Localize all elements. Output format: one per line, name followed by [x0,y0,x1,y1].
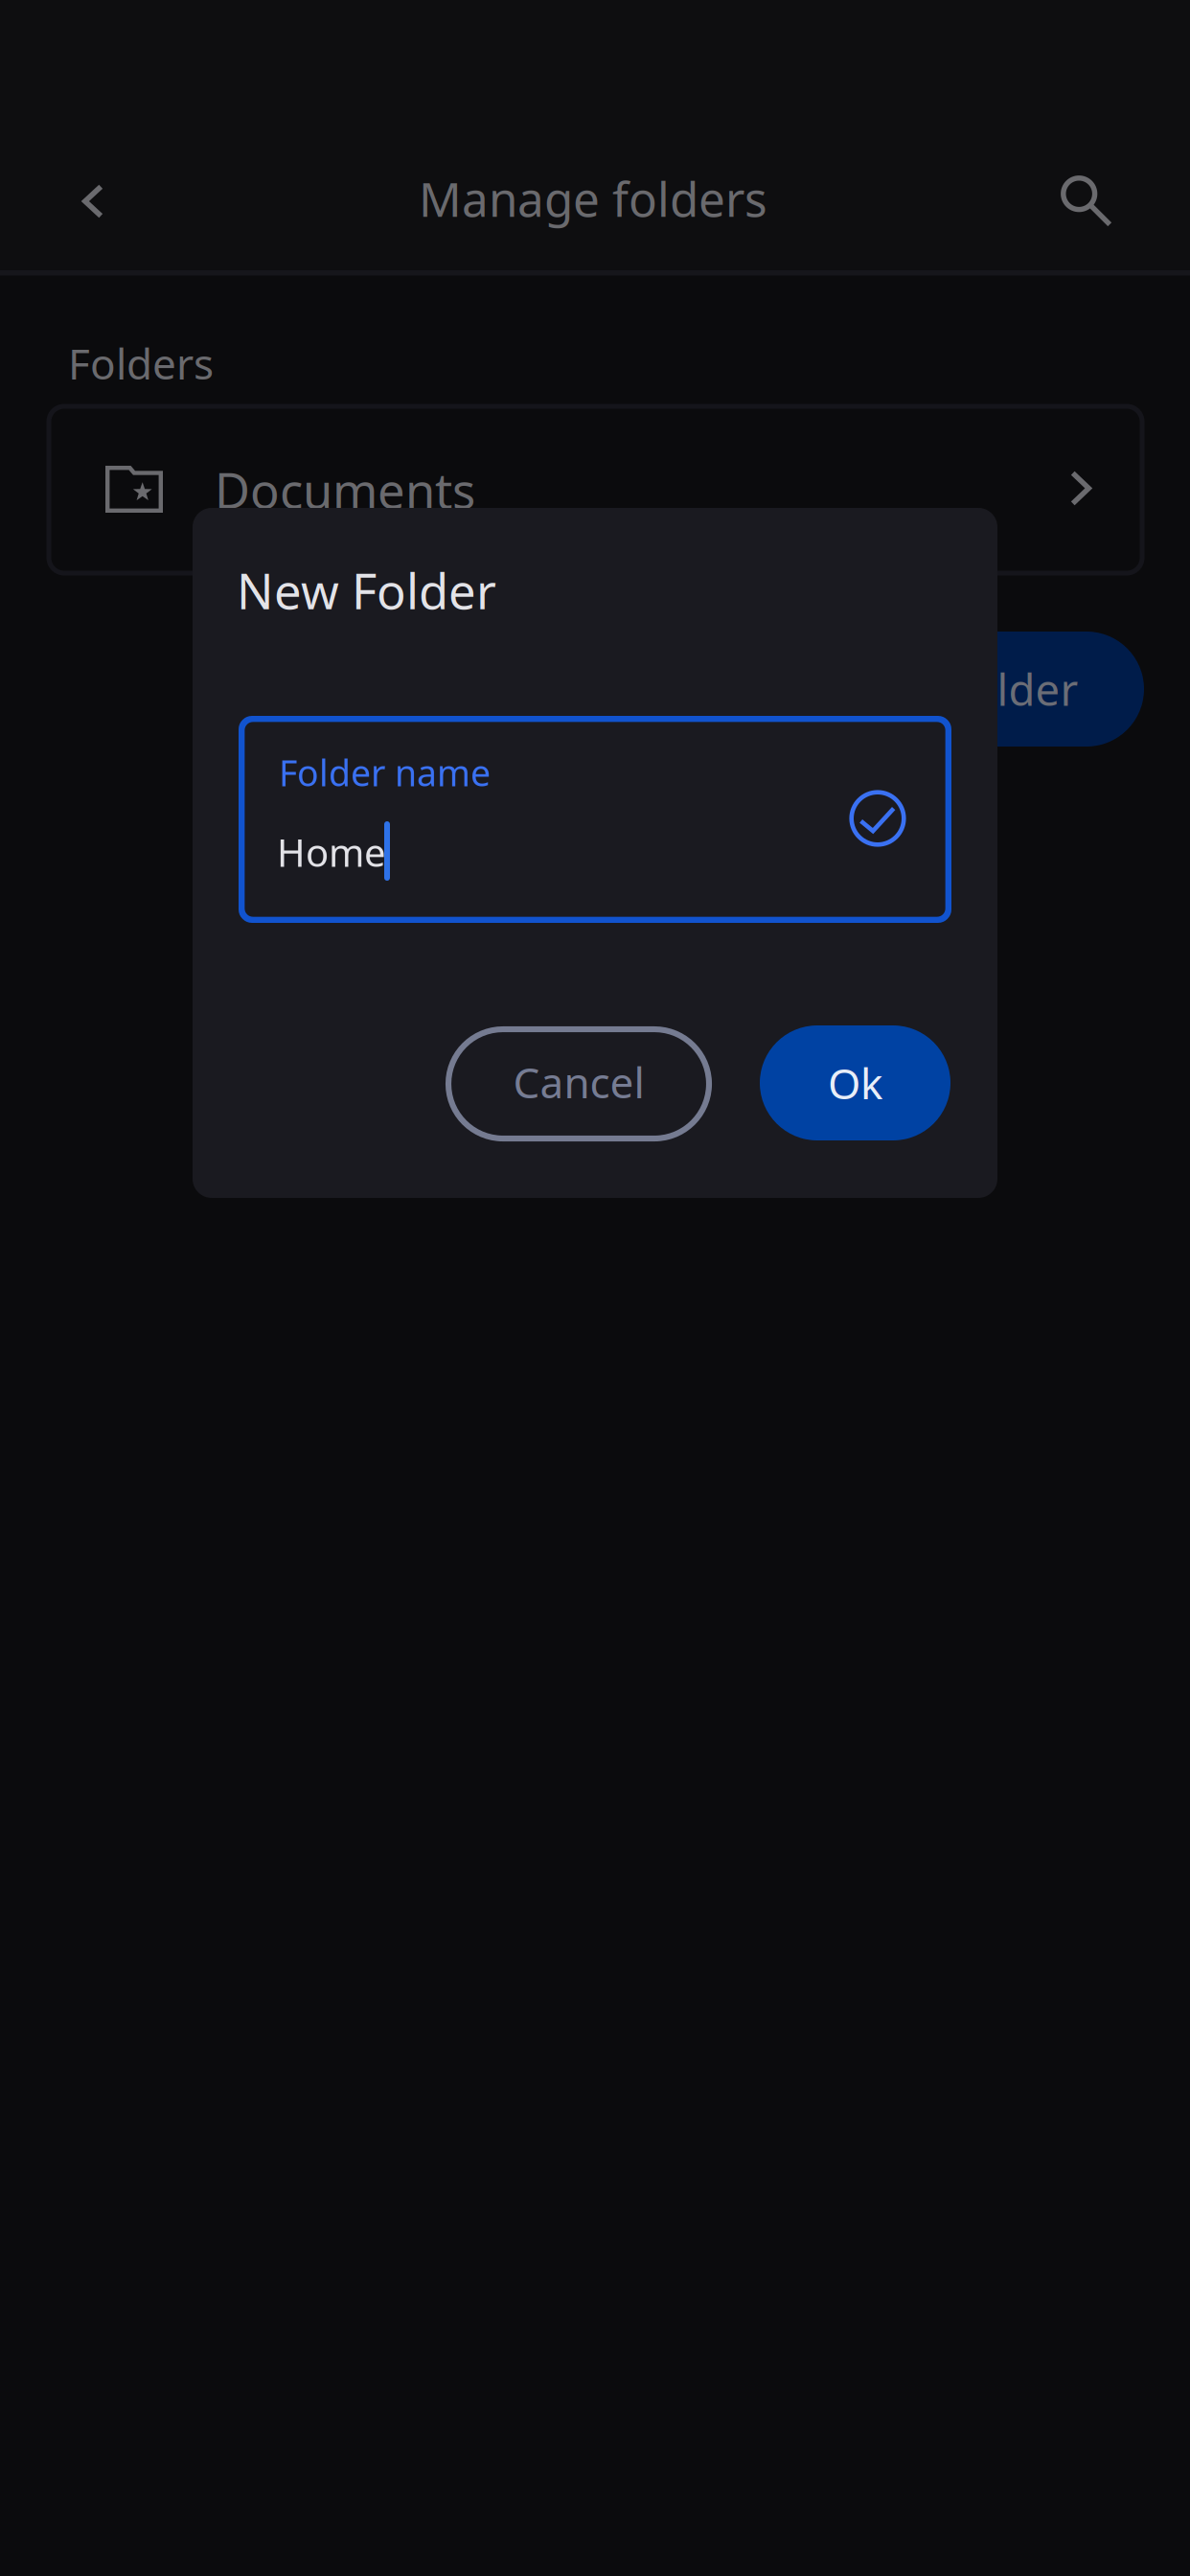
staticText: Home [277,826,386,877]
staticText: Folders [68,335,214,391]
staticText: Documents [215,458,475,522]
button[interactable]: Documents [49,406,1142,573]
button[interactable]: Ok [760,1025,950,1140]
staticText: Manage folders [419,167,767,230]
button[interactable]: Search [1027,142,1142,259]
staticText: New folder [853,660,1078,718]
staticText: Ok [828,1055,882,1111]
button[interactable]: New folder [788,632,1144,747]
button[interactable]: Cancel [448,1029,709,1138]
button[interactable]: Folder name [239,716,951,923]
staticText: Folder name [279,749,491,796]
staticText: New Folder [237,558,496,623]
staticText: Cancel [513,1054,644,1110]
button[interactable]: Back [34,142,149,259]
button[interactable]: Confirm folder name [839,780,916,857]
